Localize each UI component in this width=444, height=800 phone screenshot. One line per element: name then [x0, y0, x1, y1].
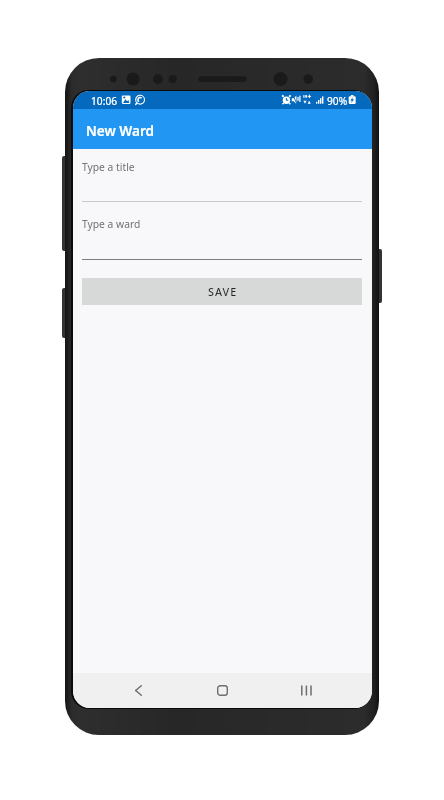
button[interactable]: SAVE [82, 278, 362, 305]
staticText: New Ward [86, 121, 155, 140]
staticText: 90% [327, 94, 348, 108]
staticText: Type a title [82, 160, 135, 174]
button[interactable]: Type a ward [82, 212, 362, 260]
button[interactable]: Home [200, 673, 244, 708]
staticText: SAVE [208, 284, 238, 299]
staticText: 10:06 [91, 94, 118, 108]
staticText: Type a ward [82, 217, 141, 231]
button[interactable]: Type a title [82, 155, 362, 202]
button[interactable]: Back [116, 673, 160, 708]
button[interactable]: Recent apps [284, 673, 328, 708]
